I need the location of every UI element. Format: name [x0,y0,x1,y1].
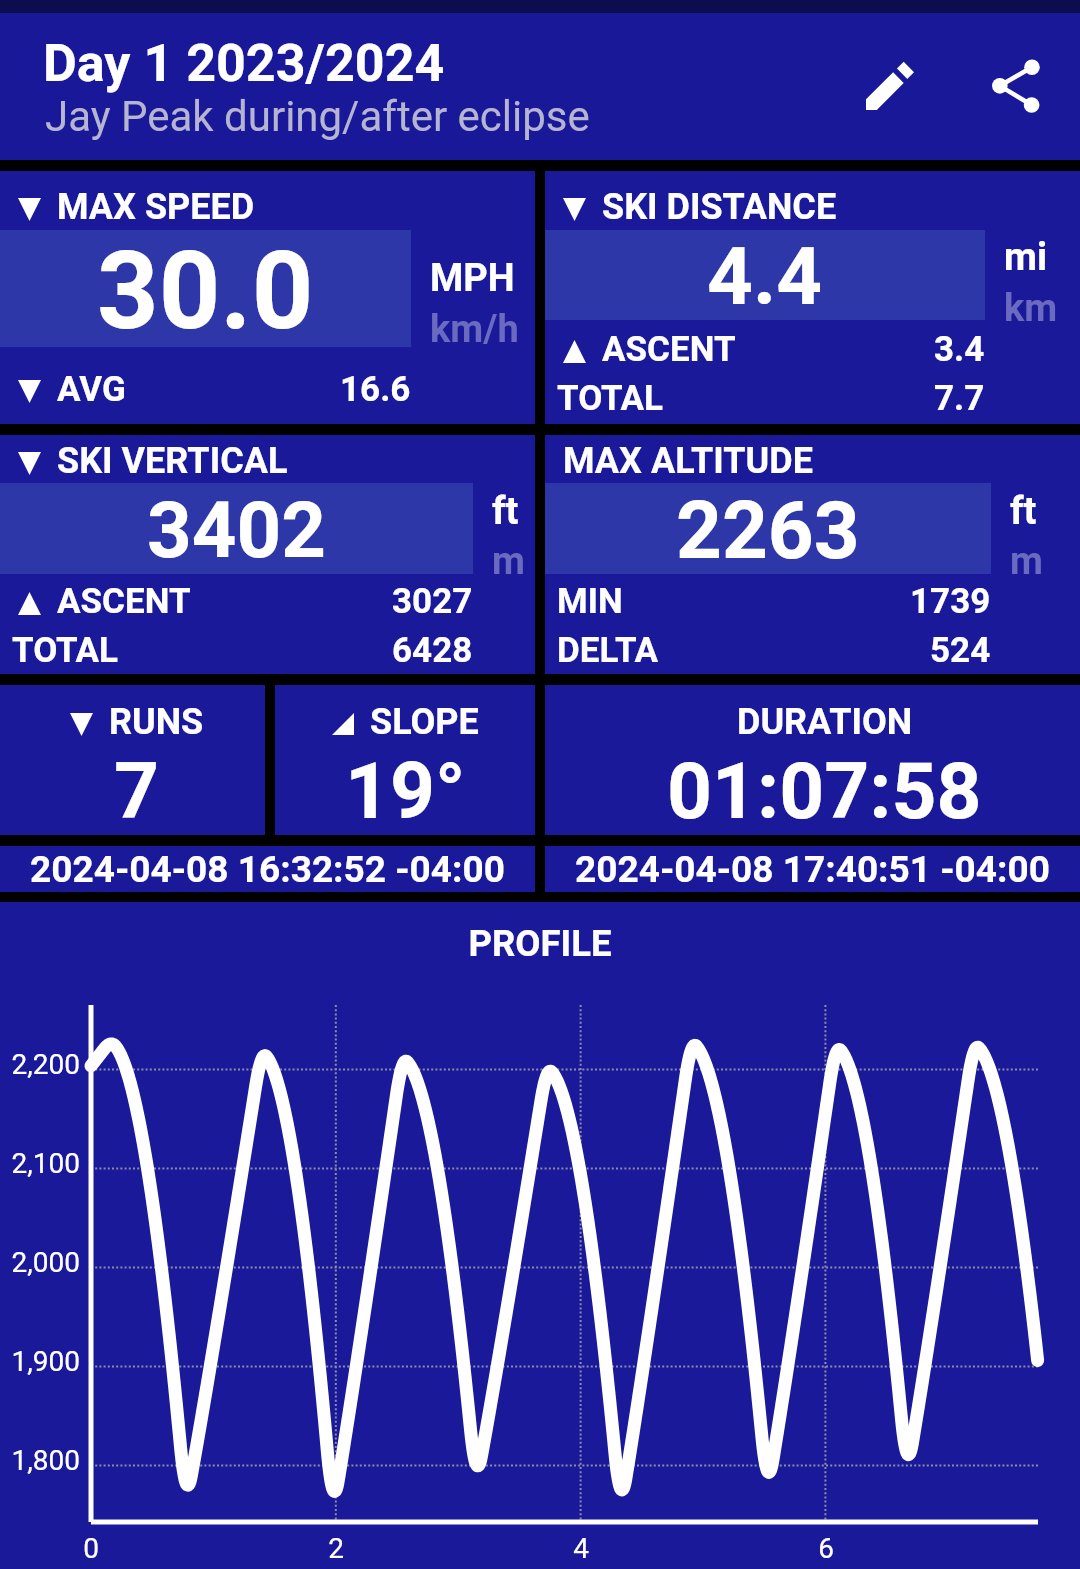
staticText: 524 [930,630,991,671]
staticText: 16.6 [340,369,411,410]
staticText: RUNS [109,701,204,743]
staticText: DURATION [737,701,913,743]
staticText: 3027 [392,581,473,622]
staticText: MAX SPEED [57,186,255,228]
staticText: ft [1010,489,1037,534]
staticText: 3402 [147,485,327,576]
staticText: 1,800 [3,1444,80,1477]
button[interactable]: Edit [842,38,938,134]
staticText: 7 [114,745,160,837]
staticText: mi [1004,235,1047,280]
staticText: DELTA [557,630,659,671]
staticText: 6428 [392,630,473,671]
staticText: SKI DISTANCE [602,186,837,228]
staticText: 4 [566,1532,596,1565]
staticText: 2,100 [3,1147,80,1180]
staticText: m [1010,539,1043,584]
staticText: 2024-04-08 16:32:52 -04:00 [30,848,505,891]
staticText: Day 1 2023/2024 [43,33,445,94]
staticText: km/h [430,307,519,352]
staticText: 7.7 [934,378,985,419]
staticText: 1739 [910,581,991,622]
staticText: ASCENT [57,581,191,622]
staticText: 4.4 [707,230,823,324]
staticText: SKI VERTICAL [57,440,288,482]
staticText: 30.0 [97,228,314,354]
staticText: 1,900 [3,1345,80,1378]
staticText: km [1004,286,1058,331]
staticText: AVG [57,369,126,410]
staticText: MIN [557,581,623,622]
staticText: MPH [430,256,515,301]
staticText: 2,200 [3,1048,80,1081]
staticText: 01:07:58 [667,745,982,837]
staticText: TOTAL [12,630,119,671]
staticText: SLOPE [370,701,479,743]
staticText: 2024-04-08 17:40:51 -04:00 [575,848,1050,891]
staticText: 0 [76,1532,106,1565]
staticText: 2263 [676,484,860,578]
staticText: TOTAL [557,378,664,419]
staticText: ASCENT [602,329,736,370]
staticText: 3.4 [934,329,985,370]
staticText: 19° [345,745,466,837]
staticText: m [492,539,525,584]
staticText: Jay Peak during/after eclipse [45,92,590,141]
staticText: 2 [321,1532,351,1565]
staticText: PROFILE [0,922,1080,965]
staticText: 2,000 [3,1246,80,1279]
staticText: 6 [811,1532,841,1565]
staticText: ft [492,489,519,534]
staticText: MAX ALTITUDE [563,440,813,482]
button[interactable]: Share [968,38,1064,134]
